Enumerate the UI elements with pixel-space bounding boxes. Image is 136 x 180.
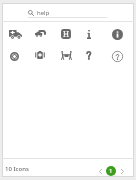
button[interactable]: Previous page <box>95 166 105 176</box>
button[interactable]: help <box>28 9 50 17</box>
button[interactable]: Information <box>79 24 99 44</box>
button[interactable]: Stretcher <box>56 45 76 65</box>
button[interactable]: 1 <box>106 166 116 176</box>
staticText: help <box>37 9 50 17</box>
button[interactable]: Tow truck <box>30 23 50 43</box>
staticText: 1 <box>109 167 113 175</box>
staticText: 10 Icons <box>5 165 29 173</box>
button[interactable]: First aid kit <box>30 45 50 65</box>
button[interactable]: Question mark <box>79 45 99 65</box>
button[interactable]: Information circle <box>107 24 127 44</box>
button[interactable]: Help <box>107 46 127 66</box>
button[interactable]: Ambulance <box>5 24 25 44</box>
button[interactable]: Next page <box>117 166 127 176</box>
button[interactable]: Support <box>4 46 24 66</box>
button[interactable]: Hospital <box>56 24 76 44</box>
